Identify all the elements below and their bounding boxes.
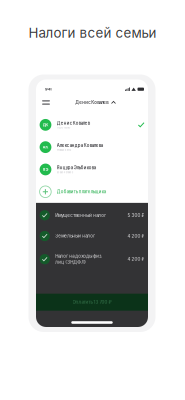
button[interactable]: Menu [40,99,51,106]
button[interactable]: Добавить плательщика [36,181,148,203]
staticText: Земельный налог [55,233,95,239]
staticText: ДК [42,122,48,127]
staticText: 4 200 ₽ [127,233,144,239]
button[interactable]: Денис Ковалев [72,100,112,105]
staticText: 9:41 [45,87,52,91]
staticText: Денис Ковалев [57,120,90,126]
staticText: Добавить плательщика [57,189,106,194]
staticText: лиц (3НДФЛ) [55,259,86,265]
button[interactable]: ЯЭ [36,158,148,181]
staticText: 773270193180 [57,126,71,129]
staticText: Налог на доходы физ. [55,253,102,259]
staticText: АК [42,145,48,149]
button[interactable]: АК [36,136,148,158]
staticText: Денис Ковалев [75,100,108,105]
staticText: 4 200 ₽ [127,256,144,262]
staticText: ЯЭ [42,167,48,172]
staticText: Оплатить 13 700 ₽ [72,300,111,305]
button[interactable]: ДК [36,114,148,136]
staticText: 5 300 ₽ [127,213,144,218]
staticText: Александра Ковалева [57,143,103,148]
staticText: Янцура Эльбикова [57,165,96,170]
staticText: 771852043112 [57,149,71,151]
staticText: Имущественный налог [55,213,106,218]
button[interactable]: Оплатить 13 700 ₽ [36,294,148,311]
staticText: Налоги всей семьи [28,25,156,41]
staticText: 503604519903 [57,171,73,174]
